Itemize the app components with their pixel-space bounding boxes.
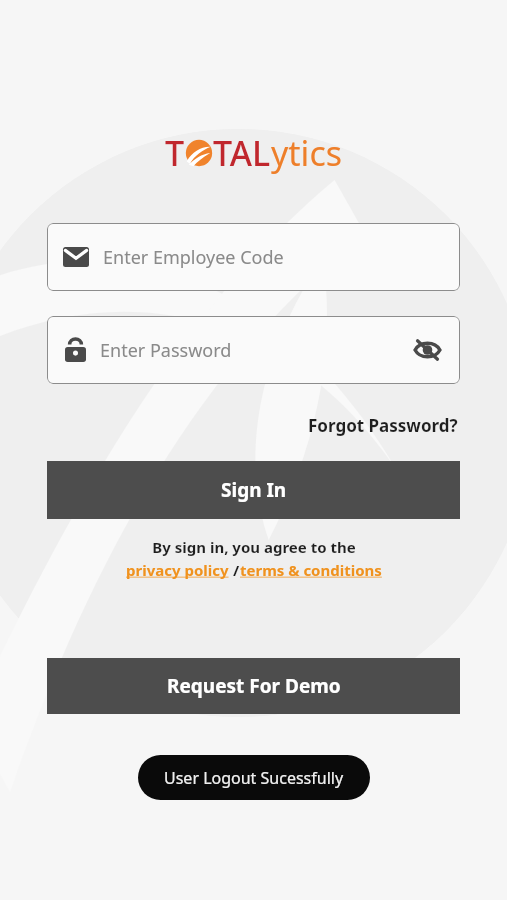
button[interactable]: Request For Demo — [47, 658, 460, 714]
staticText: Sign In — [221, 477, 287, 503]
button[interactable]: Enter Password — [47, 316, 460, 384]
staticText: Enter Employee Code — [103, 245, 284, 270]
staticText: T — [165, 130, 185, 176]
button[interactable]: Enter Employee Code — [47, 223, 460, 291]
staticText: By sign in, you agree to the — [152, 537, 356, 557]
button[interactable]: privacy policy — [126, 560, 229, 580]
button[interactable]: Forgot Password? — [306, 412, 460, 439]
staticText: ytics — [271, 130, 342, 176]
staticText: / — [229, 560, 240, 580]
staticText: terms & conditions — [240, 560, 382, 580]
staticText: User Logout Sucessfully — [164, 767, 344, 789]
button[interactable]: Show password — [410, 333, 444, 367]
button[interactable]: terms & conditions — [240, 560, 382, 580]
staticText: Request For Demo — [167, 673, 341, 699]
staticText: Enter Password — [100, 338, 410, 363]
button[interactable]: Sign In — [47, 461, 460, 519]
staticText: Forgot Password? — [308, 414, 458, 437]
staticText: privacy policy — [126, 560, 229, 580]
staticText: TAL — [213, 130, 271, 176]
